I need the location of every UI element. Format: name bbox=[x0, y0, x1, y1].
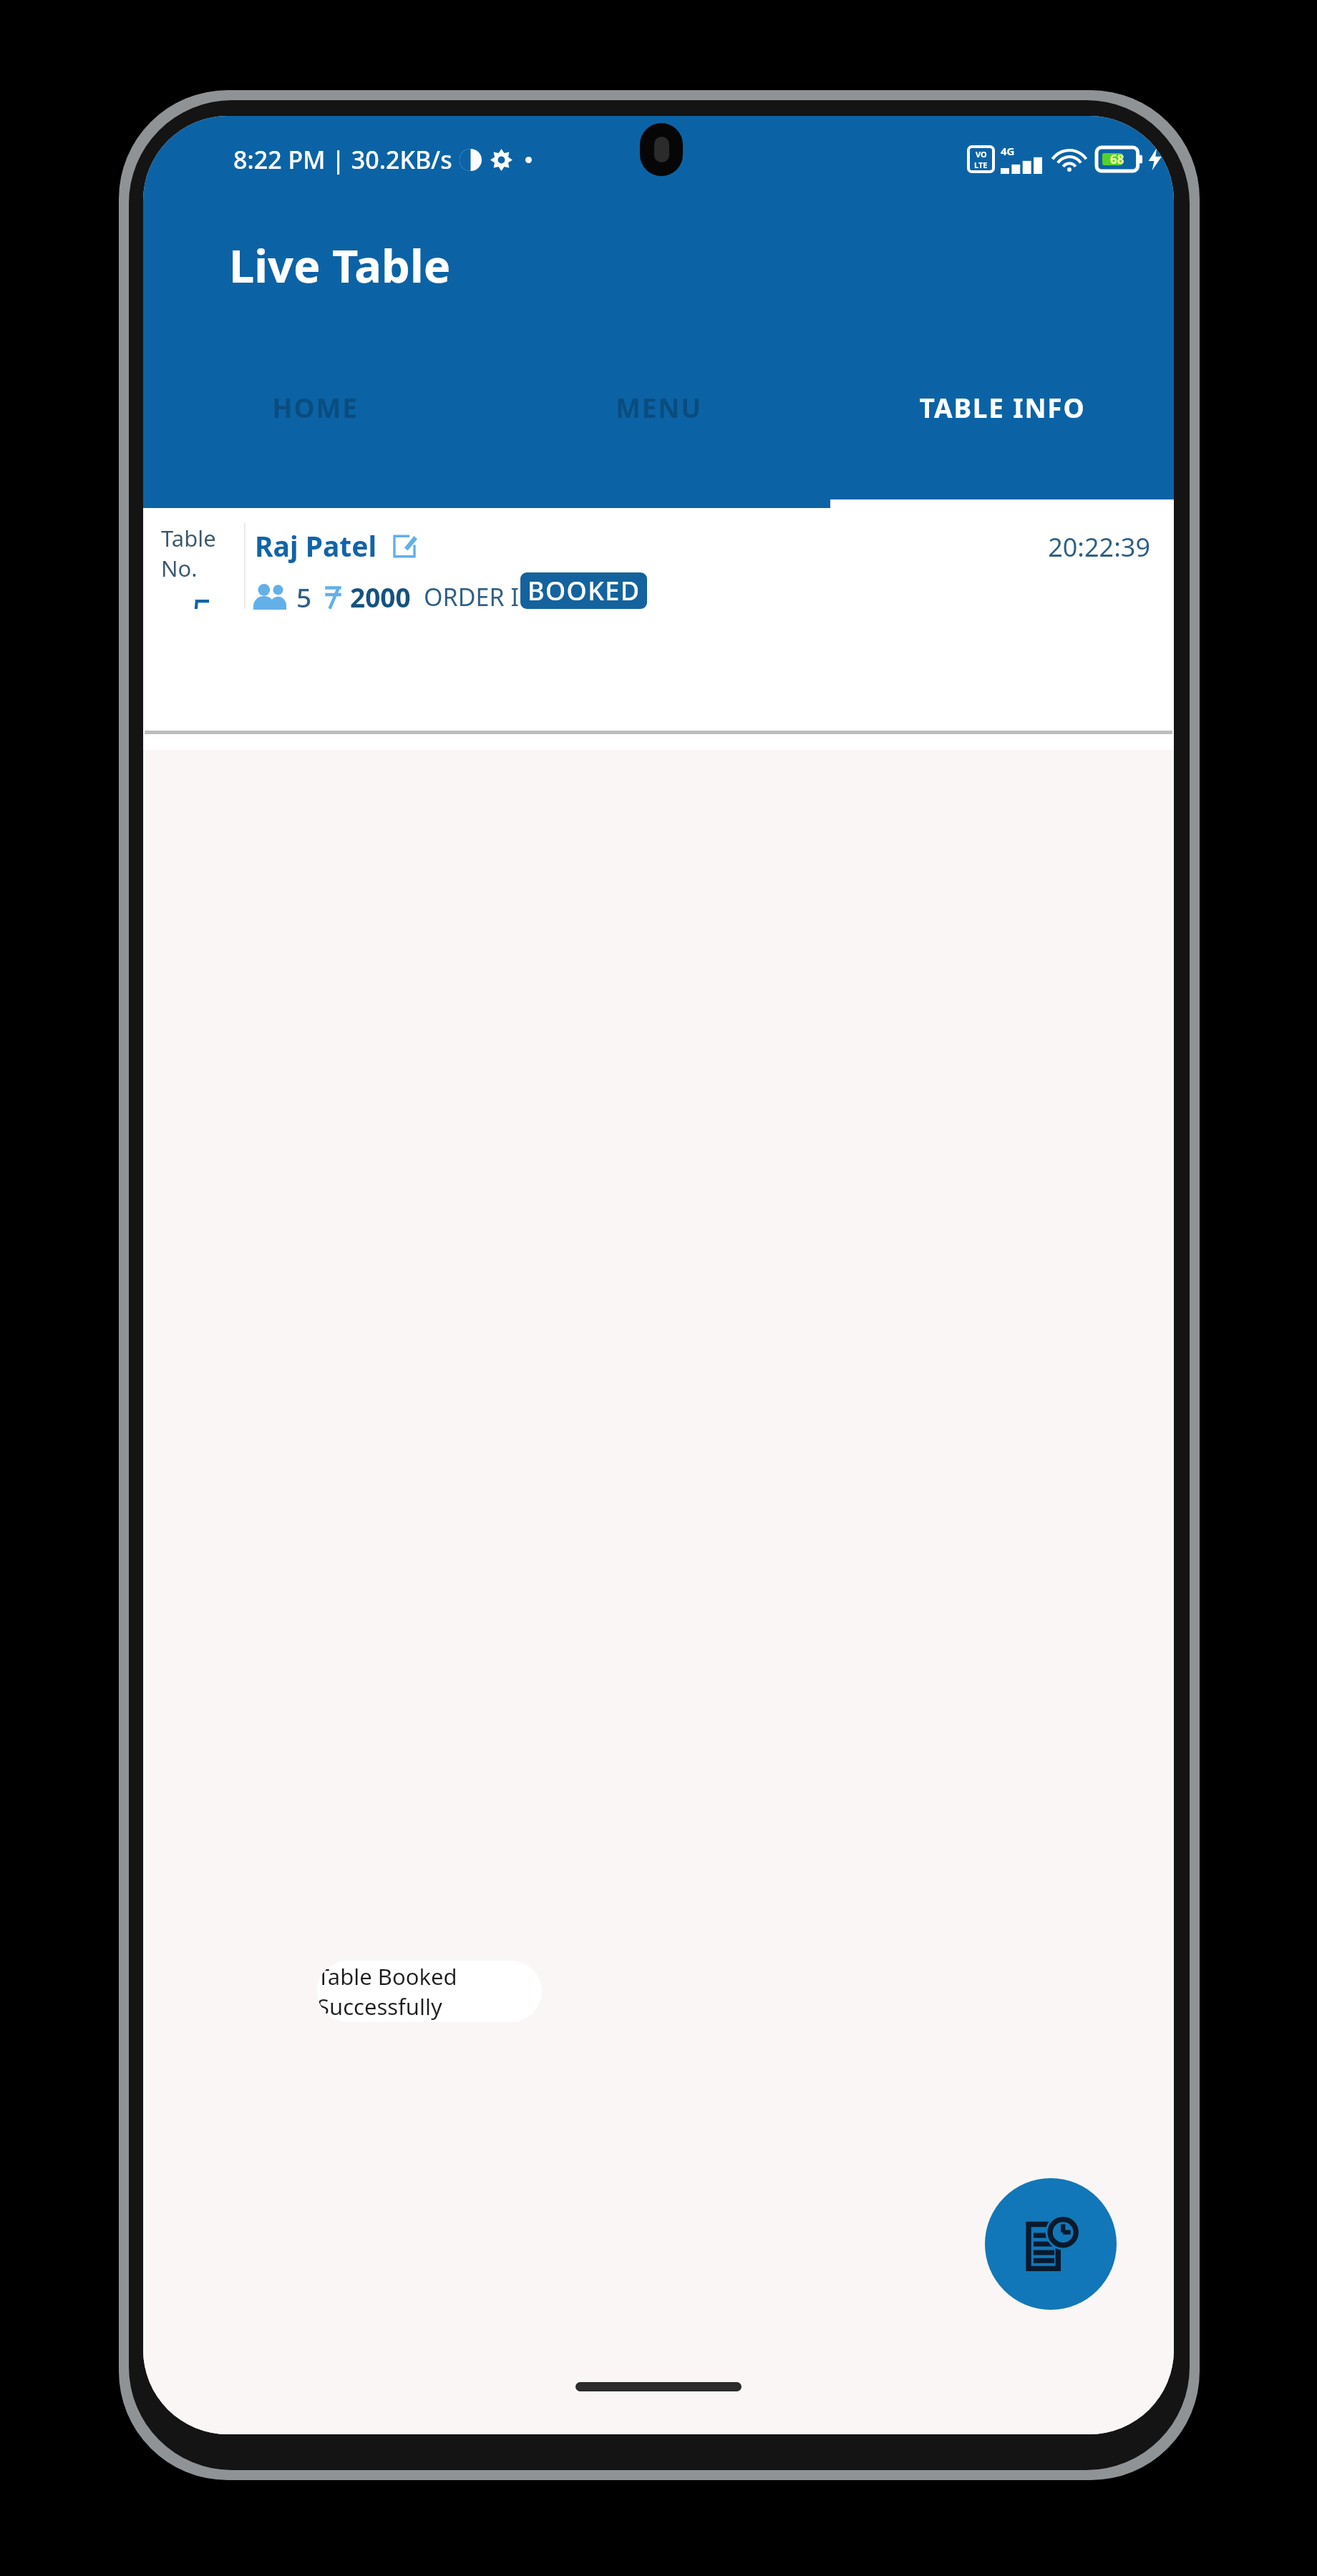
staticText: HOME bbox=[272, 389, 359, 425]
staticText: 4G bbox=[1001, 144, 1015, 158]
staticText: 68 bbox=[1110, 151, 1124, 167]
button[interactable]: Edit customer name bbox=[390, 532, 419, 560]
staticText: LTE bbox=[974, 160, 988, 170]
button[interactable]: TABLE INFO bbox=[830, 379, 1174, 508]
staticText: 2000 bbox=[350, 579, 411, 615]
staticText: Raj Patel bbox=[255, 527, 377, 565]
staticText: TABLE INFO bbox=[919, 389, 1086, 425]
button[interactable]: MENU bbox=[487, 379, 830, 508]
staticText: VO bbox=[976, 149, 987, 160]
staticText: BOOKED bbox=[528, 573, 641, 608]
button[interactable]: BOOKED bbox=[520, 572, 647, 609]
staticText: Table Booked Successfully bbox=[317, 1961, 542, 2021]
staticText: 5 bbox=[296, 579, 312, 615]
staticText: 20:22:39 bbox=[143, 530, 1150, 565]
button[interactable]: Order history bbox=[985, 2178, 1117, 2310]
button[interactable]: ORDER INFO bbox=[424, 580, 569, 613]
staticText: Live Table bbox=[229, 235, 451, 296]
staticText: Table No. bbox=[161, 523, 243, 583]
staticText: MENU bbox=[616, 389, 702, 425]
staticText: ORDER INFO bbox=[424, 580, 569, 613]
staticText: 5 bbox=[191, 586, 213, 609]
button[interactable]: Table No. bbox=[161, 523, 243, 609]
button[interactable]: HOME bbox=[143, 379, 487, 508]
staticText: 8:22 PM | 30.2KB/s bbox=[233, 143, 452, 176]
